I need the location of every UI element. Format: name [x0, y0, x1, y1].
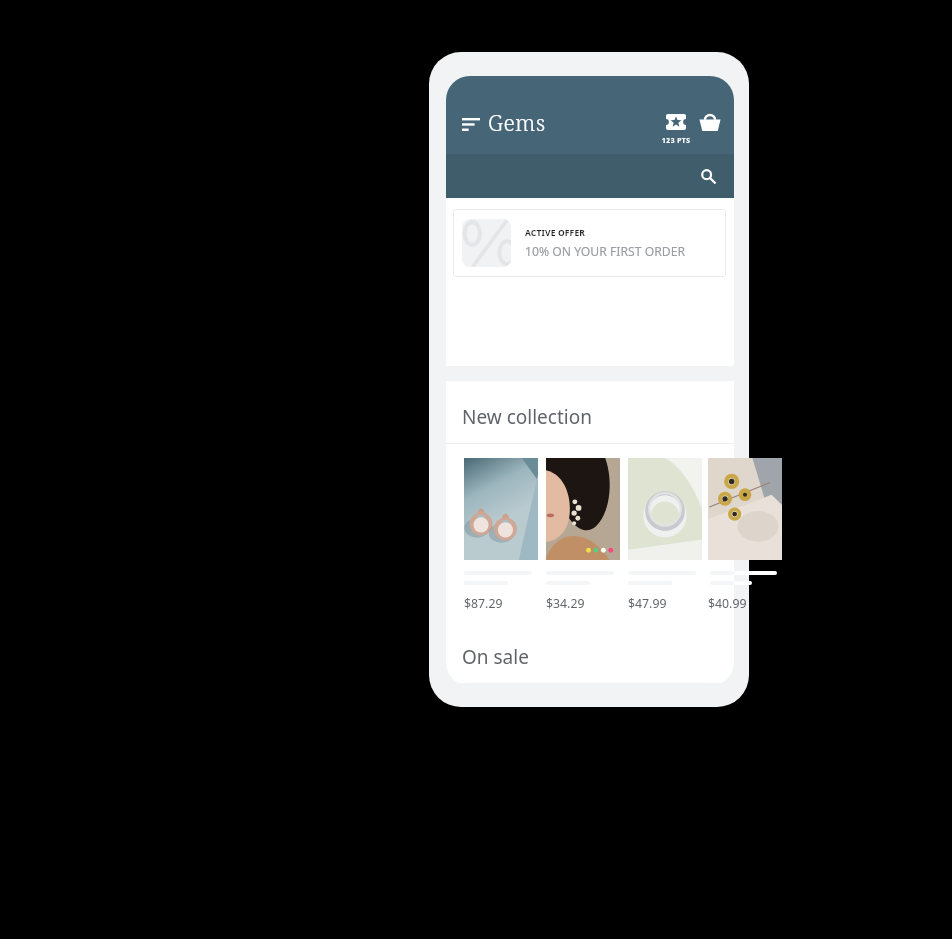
- button[interactable]: Menu: [455, 110, 487, 138]
- staticText: $40.99: [708, 595, 747, 612]
- button[interactable]: Loyalty points: [656, 114, 696, 145]
- button[interactable]: [710, 458, 734, 612]
- staticText: $47.99: [628, 595, 667, 612]
- staticText: Gems: [488, 107, 546, 135]
- staticText: ACTIVE OFFER: [525, 227, 586, 239]
- staticText: On sale: [462, 644, 529, 670]
- button[interactable]: $34.29: [546, 458, 620, 612]
- staticText: New collection: [462, 404, 592, 430]
- button[interactable]: $40.99: [708, 458, 782, 613]
- button[interactable]: $87.29: [464, 458, 538, 612]
- button[interactable]: $47.99: [628, 458, 702, 612]
- button[interactable]: Search: [696, 164, 720, 188]
- staticText: 123 PTS: [662, 136, 691, 145]
- staticText: $87.29: [464, 595, 503, 612]
- staticText: 10% ON YOUR FIRST ORDER: [525, 243, 686, 260]
- button[interactable]: ACTIVE OFFER: [453, 209, 726, 277]
- staticText: $34.29: [546, 595, 585, 612]
- button[interactable]: Shopping cart: [695, 109, 725, 135]
